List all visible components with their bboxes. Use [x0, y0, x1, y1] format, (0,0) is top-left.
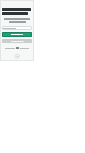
- button[interactable]: Secondary action: [2, 39, 32, 43]
- button[interactable]: Trust seal: [14, 53, 20, 59]
- button[interactable]: [2, 26, 32, 30]
- button[interactable]: Primary action: [2, 32, 32, 37]
